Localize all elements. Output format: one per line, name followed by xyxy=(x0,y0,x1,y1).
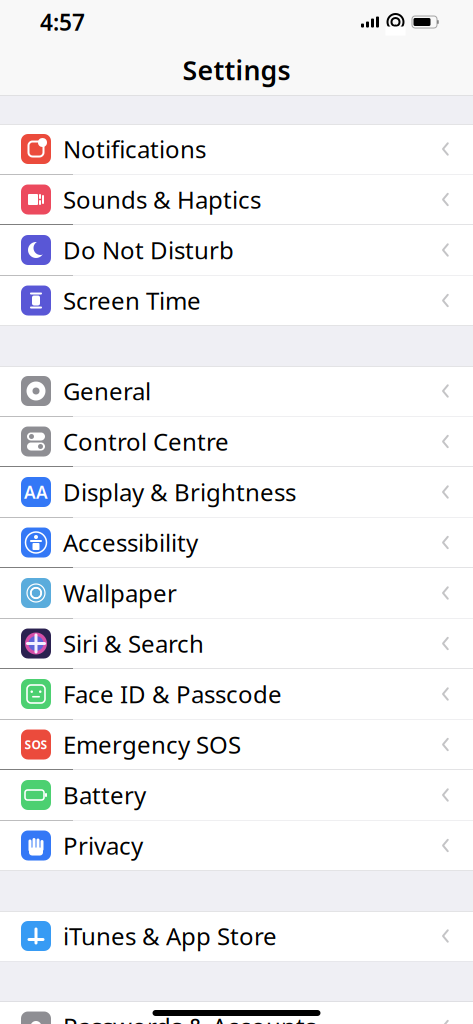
button[interactable]: Face ID & Passcode xyxy=(0,669,473,719)
staticText: Passwords & Accounts xyxy=(63,1011,316,1024)
button[interactable]: Sounds & Haptics xyxy=(0,174,473,225)
staticText: AA xyxy=(24,480,48,503)
button[interactable]: Battery xyxy=(0,770,473,820)
staticText: Settings xyxy=(182,52,290,88)
staticText: iTunes & App Store xyxy=(63,920,277,952)
staticText: Battery xyxy=(63,779,146,811)
button[interactable]: iTunes & App Store xyxy=(0,911,473,961)
staticText: Do Not Disturb xyxy=(63,234,234,266)
staticText: Emergency SOS xyxy=(63,729,241,760)
button[interactable]: Passwords & Accounts xyxy=(0,1001,473,1024)
staticText: Notifications xyxy=(63,133,206,165)
staticText: Display & Brightness xyxy=(63,476,296,508)
button[interactable]: General xyxy=(0,366,473,416)
button[interactable]: Notifications xyxy=(0,124,473,174)
button[interactable]: AA xyxy=(0,467,473,517)
button[interactable]: Wallpaper xyxy=(0,568,473,618)
button[interactable]: SOS xyxy=(0,719,473,770)
staticText: 4:57 xyxy=(40,7,85,37)
staticText: Face ID & Passcode xyxy=(63,678,282,710)
button[interactable]: Control Centre xyxy=(0,416,473,467)
button[interactable]: Accessibility xyxy=(0,517,473,568)
button[interactable]: Do Not Disturb xyxy=(0,225,473,275)
staticText: Accessibility xyxy=(63,527,198,558)
staticText: Privacy xyxy=(63,830,143,861)
staticText: SOS xyxy=(24,736,47,752)
staticText: Wallpaper xyxy=(63,577,177,609)
staticText: Sounds & Haptics xyxy=(63,184,261,215)
staticText: Siri & Search xyxy=(63,628,204,659)
staticText: Screen Time xyxy=(63,285,201,316)
staticText: Control Centre xyxy=(63,426,229,457)
button[interactable]: Privacy xyxy=(0,820,473,871)
button[interactable]: Siri & Search xyxy=(0,618,473,669)
button[interactable]: Screen Time xyxy=(0,275,473,326)
staticText: General xyxy=(63,375,151,407)
